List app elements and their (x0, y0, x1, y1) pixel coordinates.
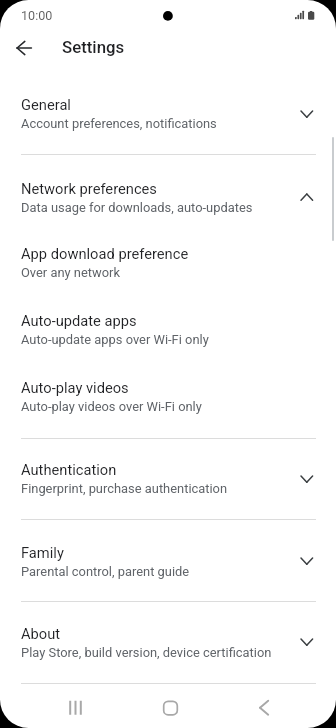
staticText: Network preferences (21, 180, 157, 197)
button[interactable]: Family (0, 544, 336, 579)
button[interactable]: Authentication (0, 461, 336, 496)
button[interactable]: Back (240, 690, 288, 726)
button[interactable]: App download preference (0, 245, 336, 280)
staticText: Data usage for downloads, auto-updates (21, 200, 253, 215)
button[interactable]: Auto-play videos (0, 379, 336, 414)
staticText: Authentication (21, 461, 117, 478)
staticText: Parental control, parent guide (21, 564, 190, 579)
button[interactable]: General (0, 96, 336, 131)
staticText: Over any network (21, 265, 120, 280)
button[interactable]: Auto-update apps (0, 312, 336, 347)
staticText: About (21, 625, 61, 642)
button[interactable]: About (0, 625, 336, 660)
staticText: Auto-play videos (21, 379, 129, 396)
button[interactable]: Network preferences (0, 180, 336, 215)
button[interactable]: Navigate up (4, 28, 44, 68)
staticText: General (21, 96, 71, 113)
button[interactable]: Recent apps (47, 690, 95, 726)
staticText: Fingerprint, purchase authentication (21, 481, 228, 496)
staticText: 10:00 (21, 8, 53, 23)
staticText: Auto-play videos over Wi-Fi only (21, 399, 202, 414)
staticText: Play Store, build version, device certif… (21, 645, 272, 660)
staticText: Settings (62, 37, 125, 57)
staticText: Auto-update apps over Wi-Fi only (21, 332, 209, 347)
staticText: Family (21, 544, 64, 561)
staticText: Auto-update apps (21, 312, 137, 329)
staticText: App download preference (21, 245, 189, 262)
button[interactable]: Home (146, 690, 194, 726)
staticText: Account preferences, notifications (21, 116, 217, 131)
